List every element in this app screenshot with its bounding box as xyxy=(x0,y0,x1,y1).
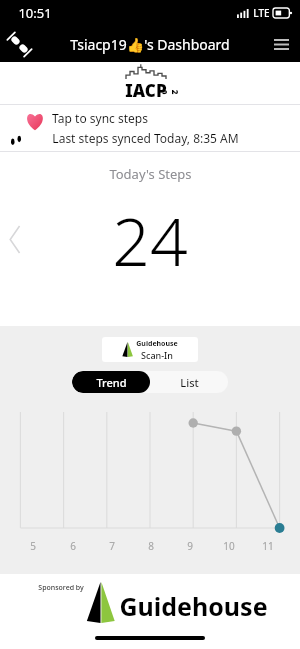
staticText: IACP xyxy=(125,79,167,102)
staticText: Guidehouse xyxy=(136,339,178,349)
staticText: 11 xyxy=(262,539,274,553)
button[interactable]: Connect device xyxy=(0,26,38,62)
staticText: Tsiacp19👍's Dashboard xyxy=(70,35,230,54)
staticText: 7 xyxy=(109,539,115,553)
staticText: 6 xyxy=(70,539,76,553)
staticText: 10 xyxy=(223,539,235,553)
staticText: 2019 xyxy=(162,87,180,96)
staticText: Scan-In xyxy=(141,349,173,361)
staticText: 8 xyxy=(148,539,154,553)
staticText: 24 xyxy=(112,195,188,285)
staticText: Sponsored by xyxy=(38,583,84,593)
button[interactable]: List xyxy=(150,371,228,393)
staticText: Trend xyxy=(96,375,127,390)
button[interactable]: Menu xyxy=(262,26,300,62)
staticText: 9 xyxy=(187,539,193,553)
button[interactable]: Guidehouse xyxy=(102,337,198,362)
staticText: Last steps synced Today, 8:35 AM xyxy=(52,130,239,146)
staticText: Today's Steps xyxy=(109,165,192,183)
staticText: Tap to sync steps xyxy=(52,110,148,126)
staticText: Guidehouse xyxy=(119,589,268,623)
staticText: List xyxy=(180,375,199,390)
staticText: 10:51 xyxy=(18,4,52,22)
button[interactable]: Trend xyxy=(72,371,150,393)
staticText: 5 xyxy=(30,539,36,553)
button[interactable]: Previous day xyxy=(0,215,30,263)
staticText: LTE xyxy=(253,6,270,20)
button[interactable]: Tap to sync steps xyxy=(0,105,300,151)
